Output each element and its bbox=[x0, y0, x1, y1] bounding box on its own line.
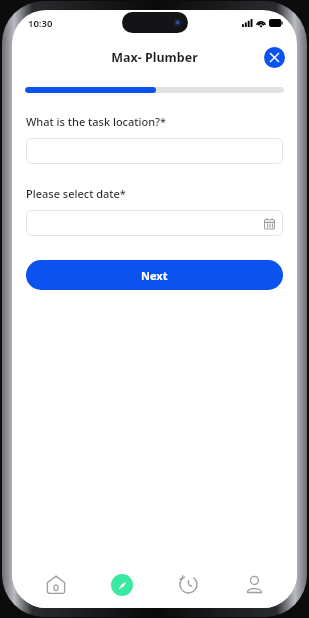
button[interactable]: Select date bbox=[26, 210, 283, 236]
button[interactable]: Home bbox=[22, 561, 89, 608]
staticText: 10:30 bbox=[28, 17, 53, 30]
button[interactable]: History bbox=[155, 561, 221, 608]
button[interactable]: Explore bbox=[89, 561, 155, 608]
staticText: Max- Plumber bbox=[111, 49, 198, 66]
button[interactable] bbox=[26, 138, 283, 164]
button[interactable]: Next bbox=[26, 260, 283, 290]
button[interactable]: Profile bbox=[221, 561, 287, 608]
staticText: Please select date* bbox=[26, 186, 126, 201]
other: Select date bbox=[264, 218, 275, 229]
staticText: What is the task location?* bbox=[26, 114, 167, 129]
staticText: Next bbox=[141, 268, 168, 283]
button[interactable]: Close bbox=[264, 47, 285, 68]
